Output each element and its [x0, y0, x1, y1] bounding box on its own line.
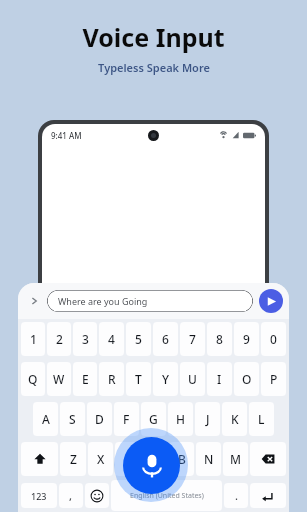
- button[interactable]: ,: [59, 483, 83, 508]
- button[interactable]: U: [180, 362, 205, 396]
- staticText: 0: [270, 331, 277, 347]
- button[interactable]: B: [169, 442, 194, 476]
- button[interactable]: E: [73, 362, 97, 396]
- button[interactable]: O: [234, 362, 259, 396]
- staticText: J: [206, 411, 210, 427]
- button[interactable]: N: [196, 442, 221, 476]
- button[interactable]: 1: [21, 322, 45, 356]
- staticText: 9:41 AM: [51, 130, 82, 141]
- button[interactable]: V: [142, 442, 167, 476]
- staticText: .: [235, 488, 238, 503]
- staticText: I: [217, 371, 222, 387]
- button[interactable]: T: [126, 362, 151, 396]
- button[interactable]: H: [168, 402, 193, 436]
- staticText: F: [123, 411, 130, 427]
- staticText: Q: [28, 371, 38, 387]
- button[interactable]: .: [224, 483, 248, 508]
- button[interactable]: W: [47, 362, 71, 396]
- button[interactable]: C: [115, 442, 140, 476]
- staticText: W: [53, 371, 65, 387]
- button[interactable]: Z: [60, 442, 86, 476]
- staticText: 5: [135, 331, 142, 347]
- staticText: 4: [108, 331, 115, 347]
- button[interactable]: 123: [21, 483, 57, 508]
- button[interactable]: I: [207, 362, 232, 396]
- button[interactable]: Enter: [250, 483, 286, 508]
- staticText: H: [176, 411, 185, 427]
- staticText: Z: [70, 451, 77, 467]
- staticText: R: [108, 371, 116, 387]
- button[interactable]: R: [99, 362, 124, 396]
- staticText: V: [151, 451, 159, 467]
- staticText: Typeless Speak More: [98, 60, 210, 75]
- staticText: G: [149, 411, 158, 427]
- staticText: M: [230, 451, 242, 467]
- button[interactable]: Q: [21, 362, 45, 396]
- staticText: 3: [82, 331, 89, 347]
- button[interactable]: 3: [73, 322, 97, 356]
- staticText: A: [42, 411, 50, 427]
- staticText: 6: [162, 331, 169, 347]
- staticText: E: [82, 371, 89, 387]
- staticText: K: [231, 411, 239, 427]
- staticText: P: [270, 371, 278, 387]
- button[interactable]: G: [141, 402, 166, 436]
- button[interactable]: Emoji: [85, 483, 109, 508]
- staticText: 7: [189, 331, 196, 347]
- staticText: 123: [31, 490, 47, 502]
- button[interactable]: A: [33, 402, 58, 436]
- button[interactable]: J: [195, 402, 220, 436]
- button[interactable]: 8: [207, 322, 232, 356]
- staticText: 9: [243, 331, 250, 347]
- staticText: 8: [216, 331, 223, 347]
- button[interactable]: F: [114, 402, 139, 436]
- button[interactable]: Voice input: [123, 437, 180, 494]
- button[interactable]: 7: [180, 322, 205, 356]
- button[interactable]: 0: [261, 322, 286, 356]
- button[interactable]: S: [60, 402, 85, 436]
- button[interactable]: Send: [259, 289, 283, 313]
- staticText: D: [95, 411, 104, 427]
- button[interactable]: 4: [99, 322, 124, 356]
- staticText: 2: [56, 331, 63, 347]
- staticText: X: [97, 451, 105, 467]
- button[interactable]: Expand toolbar: [24, 291, 44, 311]
- button[interactable]: X: [88, 442, 113, 476]
- button[interactable]: English (United States): [111, 480, 222, 511]
- button[interactable]: Y: [153, 362, 178, 396]
- button[interactable]: M: [223, 442, 248, 476]
- staticText: C: [124, 451, 132, 467]
- button[interactable]: Backspace: [250, 442, 286, 476]
- button[interactable]: L: [249, 402, 274, 436]
- staticText: O: [242, 371, 252, 387]
- staticText: Y: [162, 371, 170, 387]
- button[interactable]: Shift: [21, 442, 58, 476]
- staticText: N: [204, 451, 214, 467]
- staticText: English (United States): [130, 491, 204, 501]
- button[interactable]: 6: [153, 322, 178, 356]
- staticText: 1: [30, 331, 37, 347]
- staticText: ,: [69, 488, 73, 503]
- staticText: Where are you Going: [58, 295, 148, 307]
- staticText: L: [258, 411, 265, 427]
- staticText: B: [178, 451, 186, 467]
- staticText: U: [188, 371, 197, 387]
- button[interactable]: K: [222, 402, 247, 436]
- button[interactable]: Where are you Going: [47, 290, 253, 312]
- button[interactable]: 2: [47, 322, 71, 356]
- staticText: S: [69, 411, 76, 427]
- staticText: T: [135, 371, 142, 387]
- staticText: Voice Input: [82, 20, 225, 54]
- button[interactable]: 5: [126, 322, 151, 356]
- button[interactable]: 9: [234, 322, 259, 356]
- button[interactable]: P: [261, 362, 286, 396]
- button[interactable]: D: [87, 402, 112, 436]
